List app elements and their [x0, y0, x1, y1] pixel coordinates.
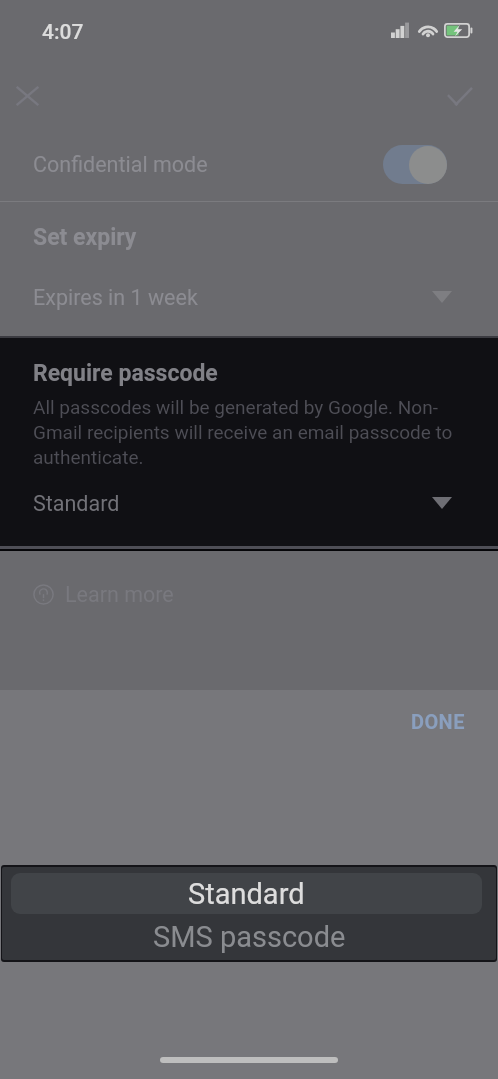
- staticText: All passcodes will be generated by Googl…: [33, 396, 465, 468]
- staticText: Confidential mode: [33, 152, 208, 177]
- staticText: 4:07: [42, 20, 84, 45]
- button[interactable]: SMS passcode: [2, 914, 496, 960]
- button[interactable]: Expires in 1 week: [0, 274, 498, 320]
- button[interactable]: Save: [436, 72, 484, 120]
- button[interactable]: Close: [3, 72, 51, 120]
- staticText: Expires in 1 week: [33, 285, 198, 310]
- staticText: Set expiry: [33, 224, 137, 251]
- button[interactable]: Confidential mode: [0, 130, 498, 199]
- staticText: Standard: [33, 491, 120, 516]
- button[interactable]: Standard: [11, 873, 482, 914]
- staticText: DONE: [411, 710, 465, 733]
- staticText: Standard: [188, 877, 305, 911]
- staticText: Require passcode: [33, 360, 218, 387]
- button[interactable]: DONE: [398, 702, 478, 741]
- staticText: Learn more: [65, 582, 174, 607]
- staticText: SMS passcode: [153, 920, 346, 954]
- button[interactable]: Require passcode: [0, 336, 498, 551]
